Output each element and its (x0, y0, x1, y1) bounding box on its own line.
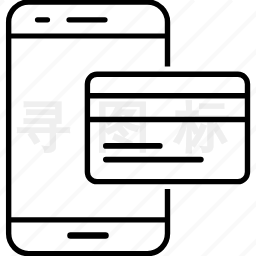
button[interactable]: Mobile phone with credit card payment ic… (0, 0, 256, 256)
